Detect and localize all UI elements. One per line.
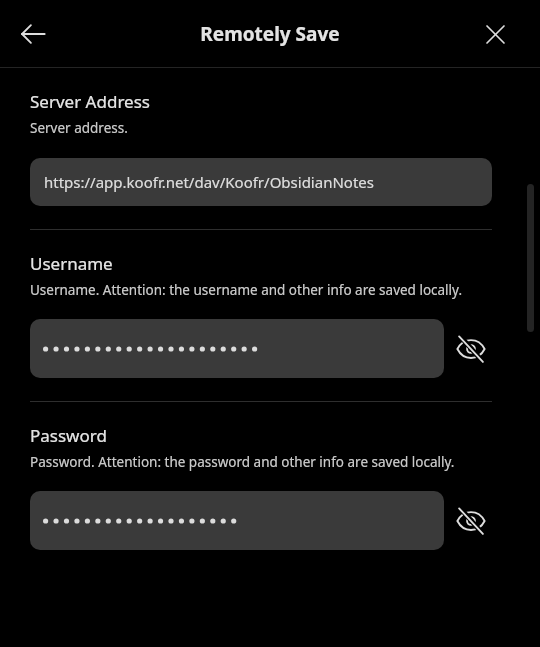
staticText: Password. Attention: the password and ot… xyxy=(30,453,455,471)
staticText: Username. Attention: the username and ot… xyxy=(30,281,463,299)
button[interactable]: Close xyxy=(475,14,515,54)
button[interactable]: Toggle visibility xyxy=(444,494,498,548)
button[interactable] xyxy=(30,491,444,550)
button[interactable]: Toggle visibility xyxy=(444,322,498,376)
staticText: Remotely Save xyxy=(200,21,340,47)
staticText: Password xyxy=(30,424,107,447)
staticText: Server Address xyxy=(30,90,150,113)
button[interactable] xyxy=(30,319,444,378)
button[interactable]: https://app.koofr.net/dav/Koofr/Obsidian… xyxy=(30,158,492,206)
button[interactable]: Back xyxy=(8,9,58,59)
staticText: https://app.koofr.net/dav/Koofr/Obsidian… xyxy=(44,172,374,192)
staticText: Server address. xyxy=(30,119,128,137)
staticText: Username xyxy=(30,252,113,275)
